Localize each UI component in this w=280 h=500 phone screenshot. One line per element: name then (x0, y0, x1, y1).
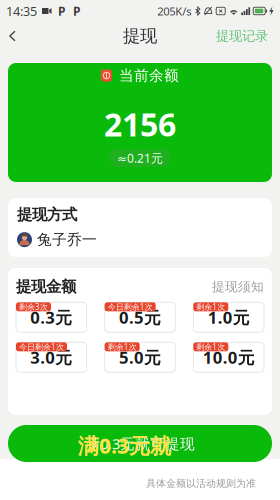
staticText: 2156 (104, 102, 176, 146)
staticText: 0.5元 (119, 306, 161, 329)
staticText: 14:35 (6, 2, 37, 20)
staticText: 1.0元 (208, 306, 250, 329)
staticText: 剩余1次 (108, 341, 137, 352)
button[interactable]: 5.0元 (105, 342, 175, 372)
staticText: 今日剩余1次 (19, 341, 64, 352)
staticText: 具体金额以活动规则为准 (146, 477, 256, 490)
staticText: 0.3元 (30, 306, 72, 329)
staticText: ≈0.21元 (117, 150, 163, 166)
button[interactable]: Back (0, 22, 28, 49)
staticText: 提现金额 (16, 277, 76, 296)
staticText: 当前余额 (119, 66, 179, 85)
staticText: 剩余1次 (196, 301, 225, 312)
button[interactable]: 3.0元 (16, 342, 87, 372)
button[interactable]: 0.5元 (105, 302, 175, 332)
staticText: 提现记录 (216, 28, 268, 44)
button[interactable]: 兔子乔一 (17, 230, 263, 249)
button[interactable]: 1.0元 (193, 302, 264, 332)
staticText: 提现 (123, 25, 157, 47)
staticText: 今日剩余1次 (108, 301, 153, 312)
staticText: 满0.3元就可提现 (85, 433, 195, 453)
staticText: 剩余1次 (196, 341, 225, 352)
staticText: 兔子乔一 (37, 230, 97, 249)
button[interactable]: 提现须知 (212, 279, 264, 295)
button[interactable]: 0.3元 (16, 302, 87, 332)
staticText: 5.0元 (119, 346, 161, 369)
button[interactable]: 提现记录 (206, 20, 280, 52)
staticText: 提现方式 (17, 205, 77, 224)
staticText: 10.0元 (203, 346, 255, 369)
staticText: 3.0元 (30, 346, 72, 369)
staticText: 提现须知 (212, 279, 264, 295)
button[interactable]: 满0.3元就可提现 (8, 425, 272, 462)
staticText: 剩余3次 (19, 301, 48, 312)
staticText: P (73, 3, 80, 19)
staticText: P (58, 3, 65, 19)
button[interactable]: 10.0元 (193, 342, 264, 372)
staticText: 205K/s (157, 3, 191, 19)
staticText: 满0.3元就 (78, 431, 171, 460)
